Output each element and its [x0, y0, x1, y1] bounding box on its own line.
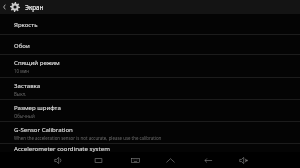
button[interactable]: Settings: [8, 0, 22, 14]
button[interactable]: Volume up: [235, 152, 251, 168]
button[interactable]: G-Sensor Calibration: [0, 122, 300, 143]
staticText: Размер шрифта: [14, 103, 61, 111]
button[interactable]: Keyboard: [127, 152, 143, 168]
staticText: Accelerometer coordinate system: [14, 144, 110, 152]
staticText: When the acceleration sensor is not accu…: [14, 135, 162, 141]
staticText: Экран: [25, 3, 44, 11]
button[interactable]: Recent apps: [90, 152, 106, 168]
button[interactable]: Accelerometer coordinate system: [0, 144, 300, 152]
staticText: Яркость: [14, 20, 38, 28]
button[interactable]: Home: [162, 152, 178, 168]
button[interactable]: Размер шрифта: [0, 100, 300, 121]
staticText: Выкл.: [14, 91, 27, 97]
button[interactable]: Спящий режим: [0, 55, 300, 77]
button[interactable]: Back: [200, 152, 216, 168]
staticText: Обои: [14, 41, 30, 49]
staticText: Заставка: [14, 81, 41, 89]
staticText: 10 мин: [14, 68, 29, 74]
button[interactable]: Back: [0, 0, 8, 14]
staticText: Спящий режим: [14, 58, 60, 66]
button[interactable]: Заставка: [0, 78, 300, 99]
button[interactable]: Яркость: [0, 14, 300, 34]
staticText: G-Sensor Calibration: [14, 125, 73, 133]
button[interactable]: Volume down: [50, 152, 66, 168]
staticText: Обычный: [14, 113, 35, 119]
button[interactable]: Обои: [0, 35, 300, 54]
